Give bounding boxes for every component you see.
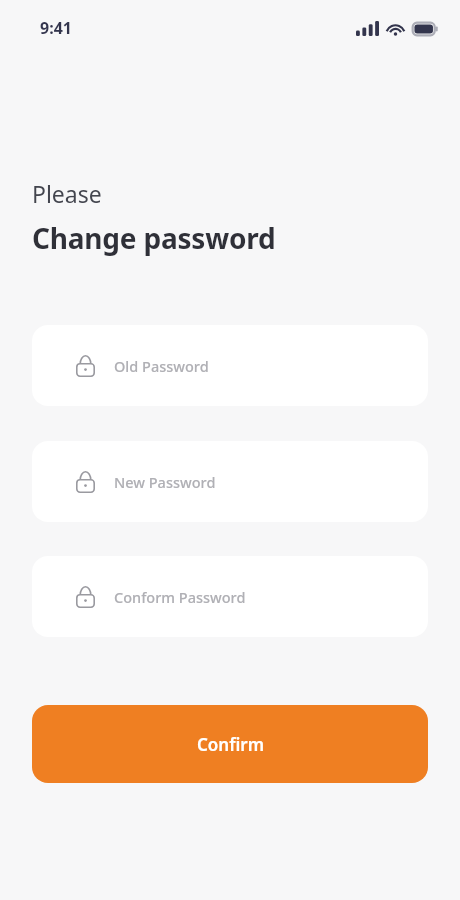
staticText: Please xyxy=(32,178,102,209)
other: Password xyxy=(76,355,95,377)
button[interactable]: Password xyxy=(32,325,428,406)
button[interactable]: Confirm xyxy=(32,705,428,783)
other: Password xyxy=(76,586,95,608)
other: Battery xyxy=(412,22,438,36)
staticText: Conform Password xyxy=(114,587,246,607)
staticText: 9:41 xyxy=(40,17,72,39)
other: Password xyxy=(76,471,95,493)
button[interactable]: Password xyxy=(32,556,428,637)
staticText: Confirm xyxy=(197,733,264,756)
other: Wi-Fi xyxy=(386,21,405,36)
other: Cellular signal xyxy=(356,21,379,36)
staticText: New Password xyxy=(114,472,216,492)
staticText: Old Password xyxy=(114,356,209,376)
button[interactable]: Password xyxy=(32,441,428,522)
staticText: Change password xyxy=(32,219,276,257)
